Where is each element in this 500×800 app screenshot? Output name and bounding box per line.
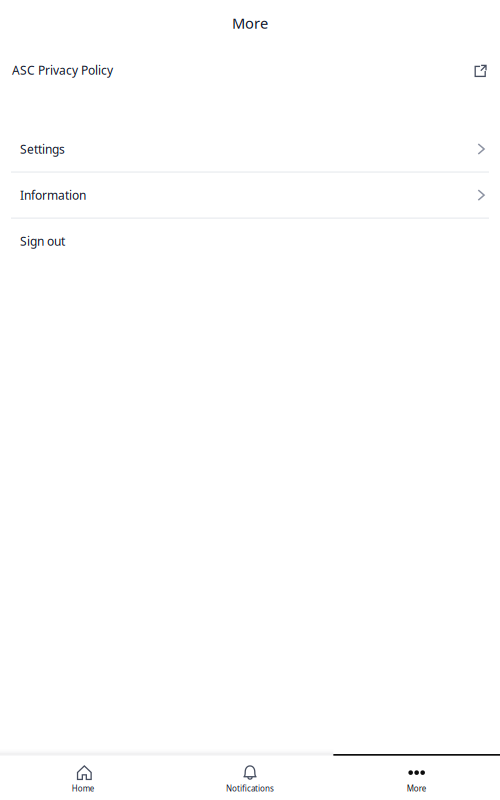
button[interactable]: ASC Privacy Policy, opens in browser <box>0 46 500 94</box>
staticText: Home <box>72 783 95 794</box>
button[interactable]: Settings <box>0 127 500 171</box>
staticText: More <box>232 13 268 33</box>
staticText: Sign out <box>20 233 65 249</box>
staticText: Information <box>20 187 86 203</box>
staticText: ASC Privacy Policy <box>12 62 113 78</box>
button[interactable]: More <box>333 755 500 800</box>
staticText: More <box>407 783 427 794</box>
button[interactable]: Information <box>0 173 500 217</box>
staticText: Notifications <box>226 783 274 794</box>
button[interactable]: Home <box>0 755 167 800</box>
staticText: Settings <box>20 141 65 157</box>
button[interactable]: Notifications <box>167 755 333 800</box>
button[interactable]: Sign out <box>0 219 500 264</box>
